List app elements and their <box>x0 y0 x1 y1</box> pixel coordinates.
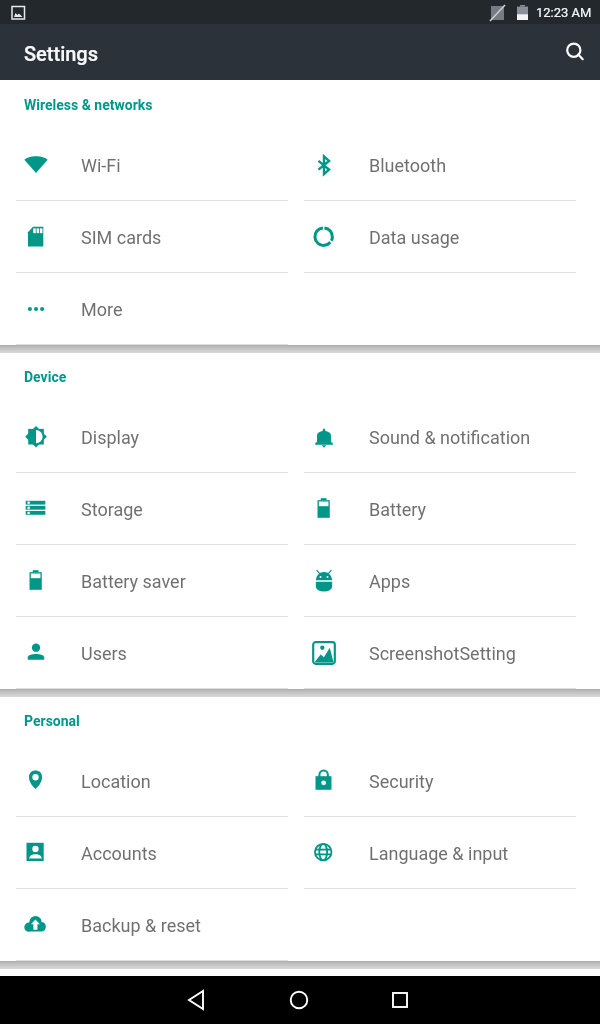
staticText: ScreenshotSetting <box>369 643 516 664</box>
button[interactable]: Recents <box>376 976 424 1024</box>
button[interactable]: Display <box>0 401 288 473</box>
staticText: More <box>81 299 123 320</box>
button[interactable]: SIM cards <box>0 201 288 273</box>
button[interactable]: Users <box>0 617 288 689</box>
button[interactable]: Storage <box>0 473 288 545</box>
staticText: 12:23 AM <box>536 5 592 20</box>
button[interactable]: More <box>0 273 288 345</box>
button[interactable]: Wi-Fi <box>0 129 288 201</box>
staticText: Data usage <box>369 227 460 248</box>
staticText: Apps <box>369 571 411 592</box>
staticText: SIM cards <box>81 227 162 248</box>
staticText: Backup & reset <box>81 915 201 936</box>
button[interactable]: ScreenshotSetting <box>288 617 576 689</box>
staticText: Display <box>81 427 140 448</box>
staticText: Personal <box>24 713 80 729</box>
staticText: Storage <box>81 499 143 520</box>
staticText: Battery saver <box>81 571 186 592</box>
staticText: Users <box>81 643 127 664</box>
button[interactable]: Battery saver <box>0 545 288 617</box>
button[interactable]: Search <box>552 28 600 76</box>
staticText: Security <box>369 771 434 792</box>
button[interactable]: Backup & reset <box>0 889 288 961</box>
staticText: Location <box>81 771 151 792</box>
staticText: Accounts <box>81 843 157 864</box>
button[interactable]: Accounts <box>0 817 288 889</box>
staticText: Settings <box>24 42 99 65</box>
staticText: Device <box>24 369 67 385</box>
button[interactable]: Security <box>288 745 576 817</box>
button[interactable]: Bluetooth <box>288 129 576 201</box>
staticText: Wi-Fi <box>81 155 121 176</box>
staticText: Wireless & networks <box>24 97 153 113</box>
button[interactable]: Language & input <box>288 817 576 889</box>
button[interactable]: Apps <box>288 545 576 617</box>
button[interactable]: Data usage <box>288 201 576 273</box>
button[interactable]: Back <box>172 976 220 1024</box>
button[interactable]: Sound & notification <box>288 401 576 473</box>
button[interactable]: Location <box>0 745 288 817</box>
staticText: Battery <box>369 499 427 520</box>
button[interactable]: Home <box>275 976 323 1024</box>
button[interactable]: Battery <box>288 473 576 545</box>
staticText: Language & input <box>369 843 509 864</box>
staticText: Bluetooth <box>369 155 447 176</box>
staticText: Sound & notification <box>369 427 531 448</box>
